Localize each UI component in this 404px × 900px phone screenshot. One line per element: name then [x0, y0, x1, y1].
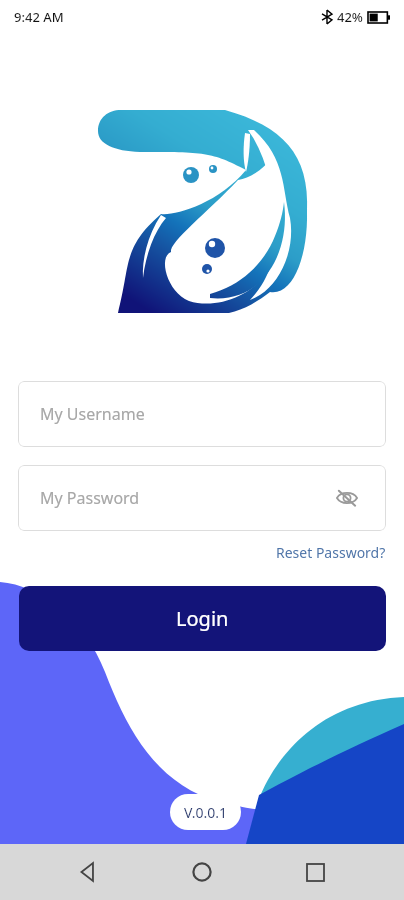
button[interactable]: Home [178, 848, 226, 896]
staticText: V.0.0.1 [184, 803, 227, 822]
staticText: My Username [40, 403, 145, 425]
button[interactable]: My Password [18, 465, 386, 531]
button[interactable]: Reset Password? [276, 543, 386, 562]
staticText: 42% [337, 8, 363, 26]
button[interactable]: Show password [330, 481, 364, 515]
button[interactable]: My Username [18, 381, 386, 447]
button[interactable]: Recents [291, 848, 339, 896]
button[interactable]: Login [19, 586, 386, 651]
button[interactable]: Back [65, 848, 113, 896]
staticText: Login [176, 605, 229, 632]
button[interactable]: V.0.0.1 [170, 794, 241, 830]
staticText: 9:42 AM [14, 8, 64, 26]
staticText: Reset Password? [276, 543, 386, 562]
staticText: My Password [40, 487, 140, 509]
